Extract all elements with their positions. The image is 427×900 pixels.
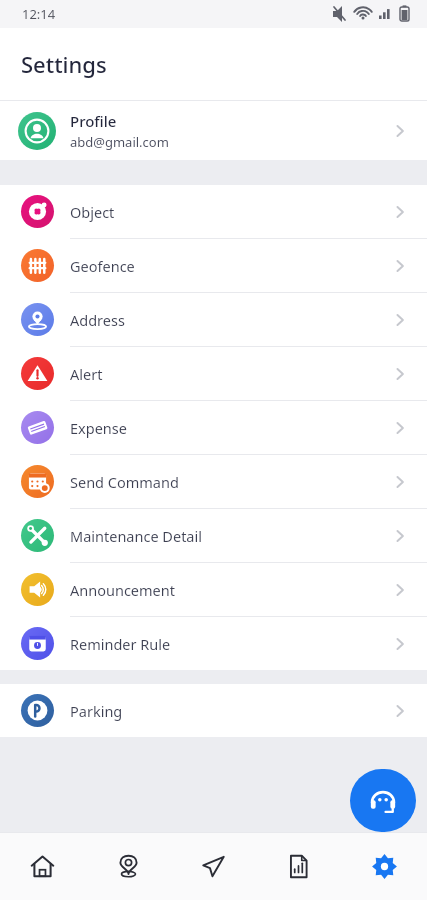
- staticText: 12:14: [22, 5, 56, 23]
- staticText: Send Command: [70, 472, 179, 492]
- button[interactable]: Send Command: [0, 455, 427, 508]
- staticText: Announcement: [70, 580, 175, 600]
- staticText: abd@gmail.com: [70, 133, 169, 151]
- button[interactable]: Settings: [342, 833, 427, 900]
- staticText: Parking: [70, 701, 123, 721]
- button[interactable]: Address: [0, 293, 427, 346]
- button[interactable]: Reports: [256, 833, 341, 900]
- staticText: Reminder Rule: [70, 634, 171, 654]
- button[interactable]: Profile: [0, 101, 427, 160]
- staticText: Geofence: [70, 256, 135, 276]
- button[interactable]: Expense: [0, 401, 427, 454]
- button[interactable]: Maintenance Detail: [0, 509, 427, 562]
- button[interactable]: Geofence: [0, 239, 427, 292]
- button[interactable]: Object: [0, 185, 427, 238]
- button[interactable]: Announcement: [0, 563, 427, 616]
- staticText: Address: [70, 310, 125, 330]
- button[interactable]: Reminder Rule: [0, 617, 427, 670]
- staticText: Alert: [70, 364, 103, 384]
- staticText: Object: [70, 202, 115, 222]
- staticText: Expense: [70, 418, 127, 438]
- staticText: Maintenance Detail: [70, 526, 202, 546]
- button[interactable]: Parking: [0, 684, 427, 737]
- staticText: Settings: [21, 49, 107, 79]
- button[interactable]: Home: [0, 833, 85, 900]
- staticText: Profile: [70, 111, 117, 131]
- button[interactable]: Support: [350, 769, 416, 832]
- button[interactable]: Navigate: [171, 833, 256, 900]
- button[interactable]: Alert: [0, 347, 427, 400]
- button[interactable]: Places: [86, 833, 171, 900]
